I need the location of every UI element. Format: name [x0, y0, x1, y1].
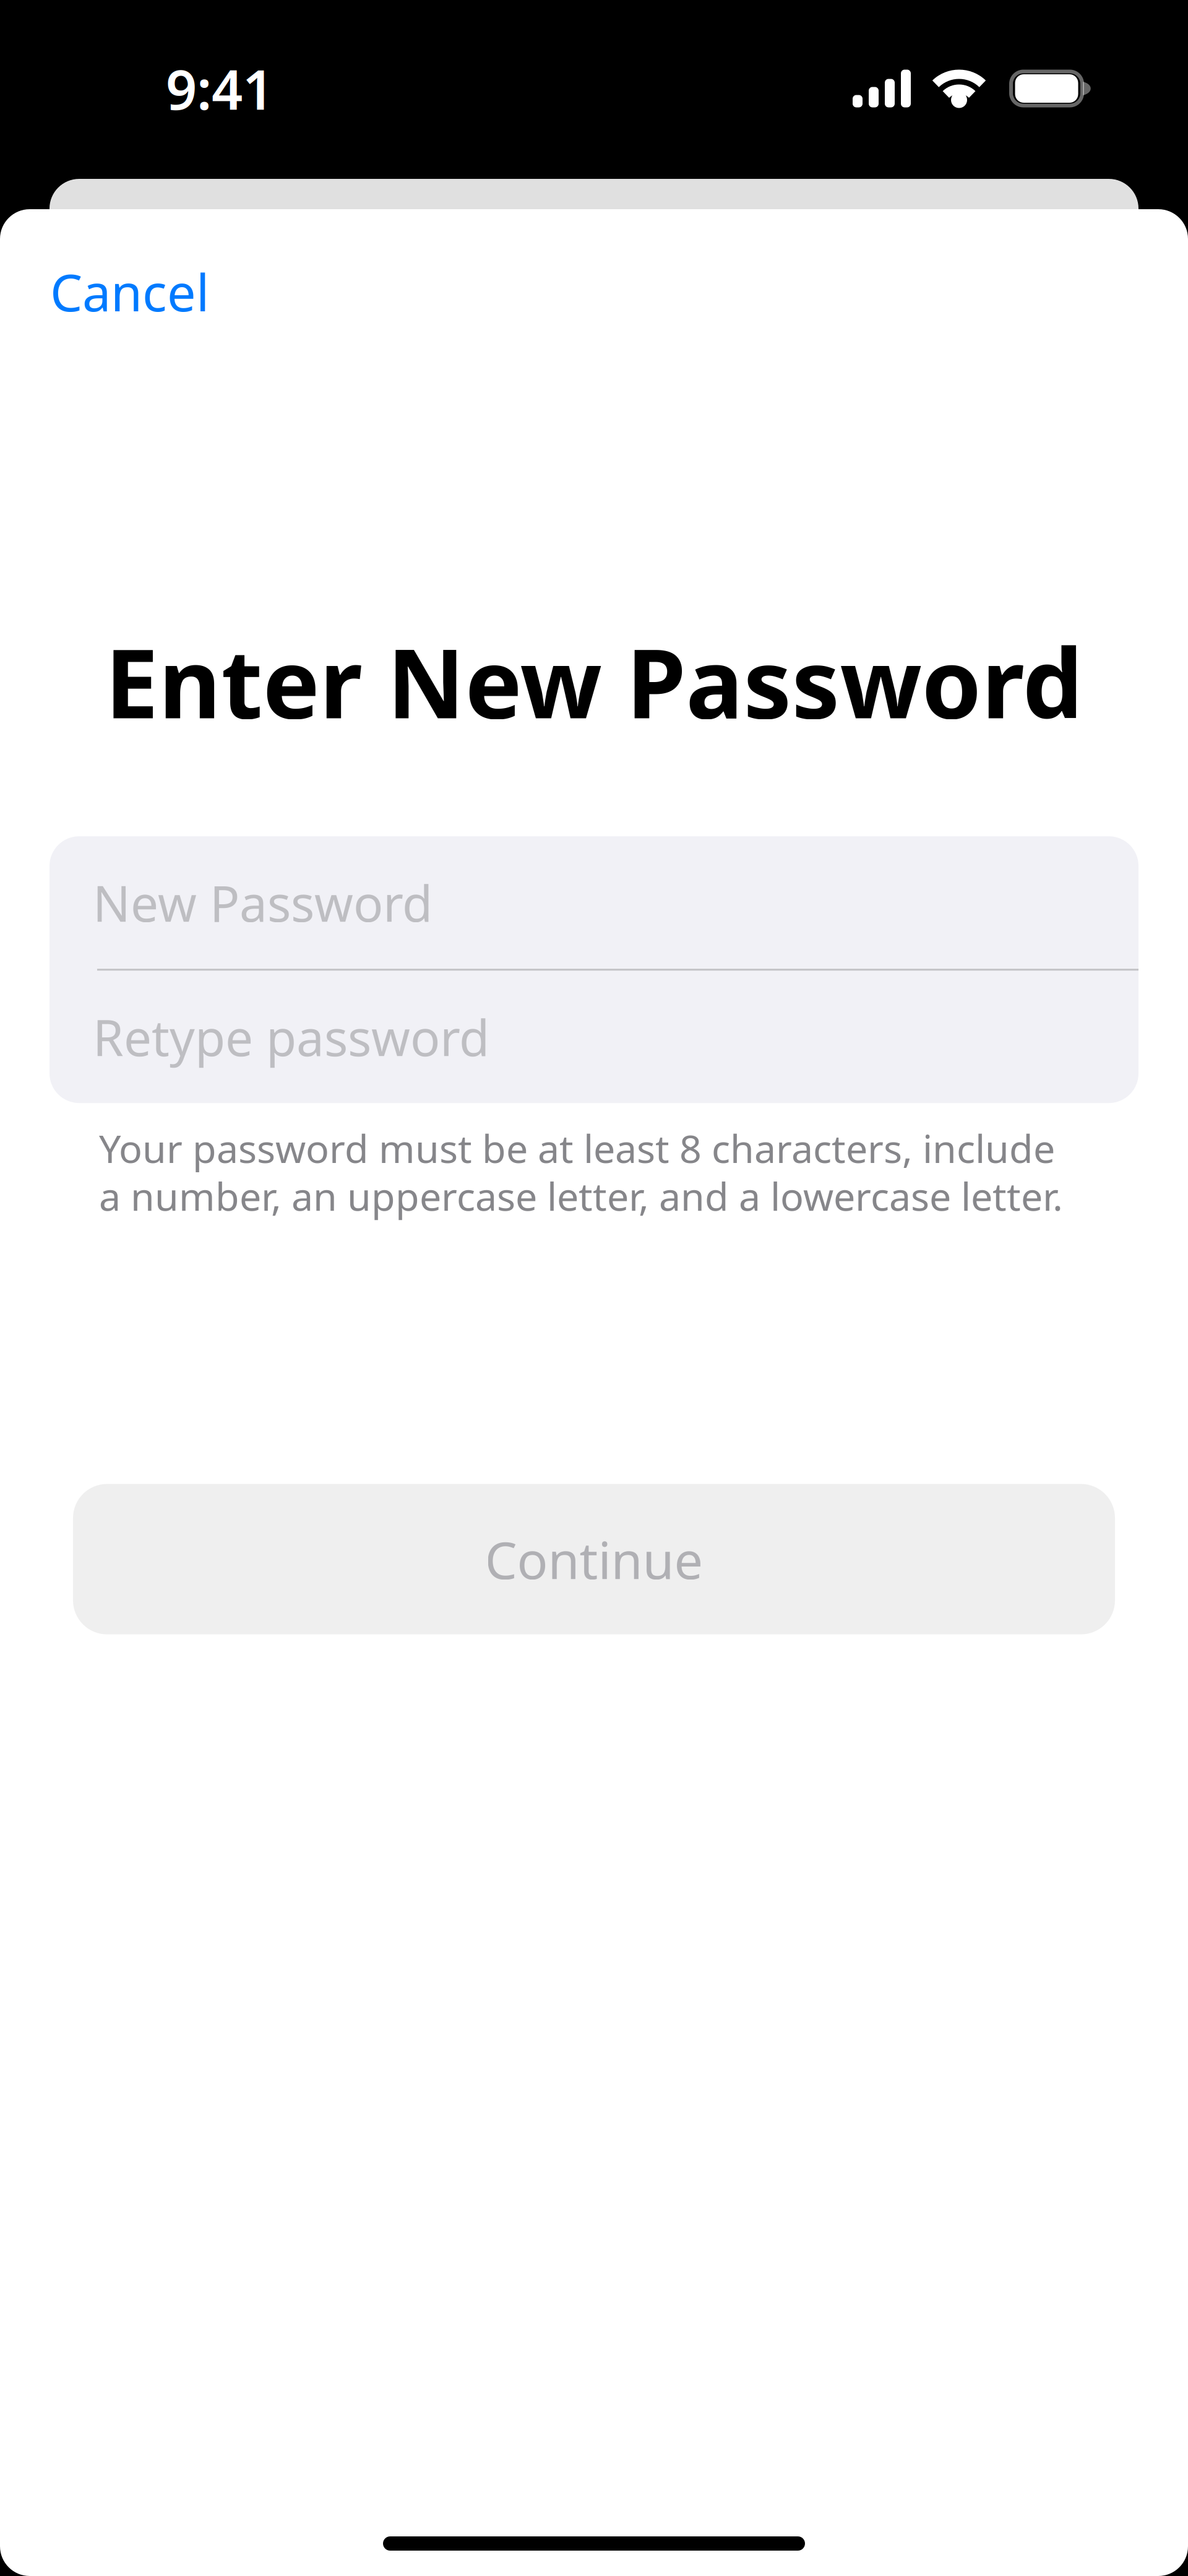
staticText: a number, an uppercase letter, and a low…	[99, 1170, 1063, 1222]
staticText: Cancel	[50, 257, 209, 325]
staticText: New Password	[93, 870, 433, 935]
staticText: Enter New Password	[105, 618, 1083, 745]
button[interactable]: Retype password	[49, 971, 1138, 1103]
button[interactable]: Cancel	[0, 252, 234, 331]
staticText: Continue	[485, 1525, 703, 1593]
staticText: Retype password	[93, 1004, 489, 1070]
button[interactable]: New Password	[49, 836, 1138, 969]
staticText: Your password must be at least 8 charact…	[99, 1122, 1055, 1174]
staticText: 9:41	[166, 52, 273, 125]
button[interactable]: Continue	[73, 1484, 1115, 1634]
